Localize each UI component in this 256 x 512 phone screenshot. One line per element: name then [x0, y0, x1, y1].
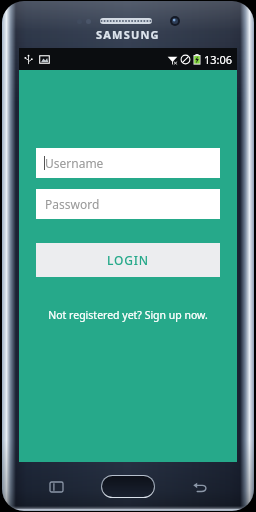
staticText: SAMSUNG: [96, 27, 160, 42]
staticText: Username: [45, 155, 104, 171]
button[interactable]: Password: [36, 189, 220, 219]
button[interactable]: Back: [180, 476, 220, 498]
button[interactable]: LOGIN: [36, 243, 220, 277]
button[interactable]: Not registered yet? Sign up now.: [36, 308, 220, 322]
staticText: LOGIN: [107, 252, 149, 268]
staticText: 13:06: [204, 52, 233, 67]
staticText: Password: [45, 196, 100, 212]
staticText: Not registered yet? Sign up now.: [48, 308, 208, 322]
button[interactable]: Recents: [36, 476, 76, 498]
button[interactable]: Username: [36, 148, 220, 178]
button[interactable]: Home: [102, 476, 154, 497]
